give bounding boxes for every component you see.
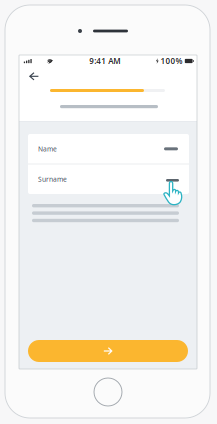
button[interactable]: Back: [24, 67, 44, 86]
staticText: 100%: [160, 56, 182, 66]
staticText: 9:41 AM: [89, 56, 120, 66]
button[interactable]: Next: [28, 340, 188, 362]
staticText: Name: [38, 144, 57, 153]
button[interactable]: Surname: [28, 164, 189, 194]
button[interactable]: Name: [28, 134, 189, 164]
staticText: Surname: [38, 175, 67, 184]
